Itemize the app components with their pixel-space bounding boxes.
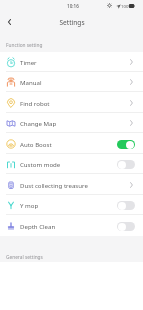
button[interactable]: Open Manual	[127, 75, 135, 89]
staticText: General settings	[6, 254, 43, 261]
button[interactable]: Manual	[0, 72, 143, 92]
button[interactable]: Depth Clean toggle	[117, 222, 135, 231]
button[interactable]: Depth Clean	[0, 216, 143, 236]
button[interactable]: Y mop	[0, 195, 143, 215]
button[interactable]: Custom mode toggle	[117, 160, 135, 169]
button[interactable]: Timer	[0, 52, 143, 72]
staticText: Dust collecting treasure	[20, 181, 127, 189]
button[interactable]: Dust collecting treasure	[0, 175, 143, 195]
staticText: Function setting	[6, 42, 43, 49]
button[interactable]: Open Find robot	[127, 96, 135, 110]
button[interactable]: Open Dust collecting treasure	[127, 178, 135, 192]
button[interactable]: Open Timer	[127, 55, 135, 69]
staticText: Depth Clean	[20, 222, 117, 230]
staticText: Manual	[20, 78, 127, 86]
button[interactable]: Change Map	[0, 113, 143, 133]
button[interactable]: Find robot	[0, 93, 143, 113]
staticText: Y mop	[20, 201, 117, 209]
button[interactable]: Y mop toggle	[117, 201, 135, 210]
staticText: 10:16	[67, 3, 79, 9]
staticText: Settings	[59, 18, 85, 27]
staticText: Auto Boost	[20, 140, 117, 148]
button[interactable]: Auto Boost	[0, 134, 143, 154]
staticText: Find robot	[20, 99, 127, 107]
button[interactable]: Auto Boost toggle	[117, 140, 135, 149]
staticText: Custom mode	[20, 160, 117, 168]
button[interactable]: Back	[0, 13, 18, 31]
button[interactable]: Custom mode	[0, 154, 143, 174]
staticText: Timer	[20, 58, 127, 66]
staticText: Change Map	[20, 119, 127, 127]
button[interactable]: Open Change Map	[127, 116, 135, 130]
staticText: 100%	[121, 3, 132, 9]
